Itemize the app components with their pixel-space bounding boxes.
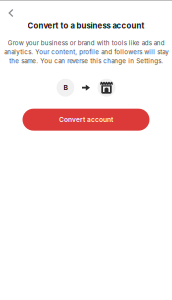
staticText: Grow your business or brand with tools l… <box>4 39 168 65</box>
staticText: B <box>63 84 67 92</box>
staticText: Convert account <box>59 116 113 124</box>
staticText: Convert to a business account <box>27 21 144 30</box>
button[interactable]: Convert account <box>22 109 149 131</box>
button[interactable]: Back <box>0 2 22 24</box>
